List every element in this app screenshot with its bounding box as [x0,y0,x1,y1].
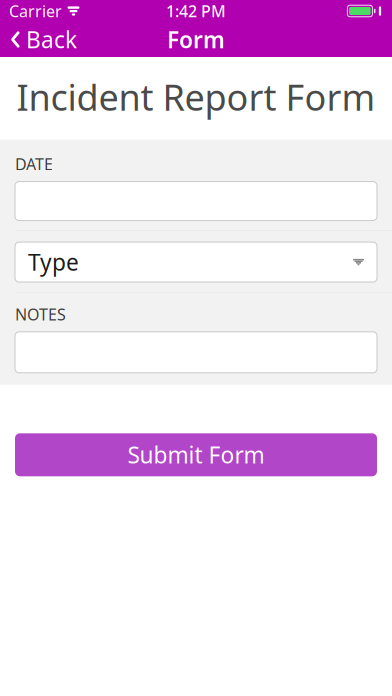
button[interactable]: Text field [15,332,377,373]
staticText: NOTES [15,304,66,325]
staticText: Form [167,24,225,54]
button[interactable]: Submit Form [15,433,377,476]
staticText: Incident Report Form [16,73,375,121]
button[interactable]: Type [15,242,377,282]
staticText: Back [26,24,77,54]
button[interactable]: Text field [15,182,377,221]
staticText: Carrier [9,0,62,22]
button[interactable]: Back [0,22,89,57]
staticText: Type [28,247,79,277]
staticText: DATE [15,153,53,174]
staticText: Submit Form [127,440,264,470]
staticText: 1:42 PM [166,0,226,22]
